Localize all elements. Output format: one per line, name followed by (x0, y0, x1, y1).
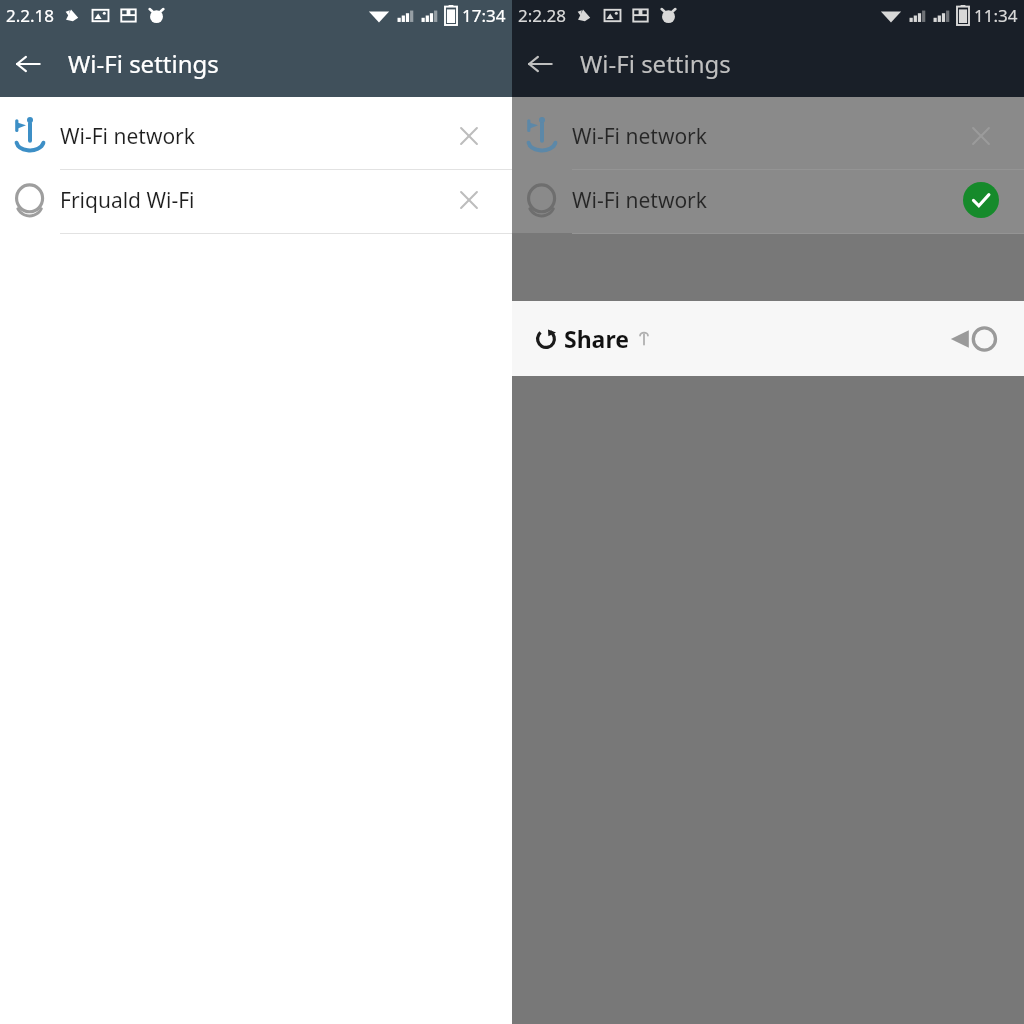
button[interactable]: Friquald Wi-Fi (0, 168, 512, 232)
button[interactable]: Share (512, 301, 1024, 376)
button[interactable]: Connected (938, 168, 1024, 232)
button[interactable]: Wi-Fi network (512, 104, 1024, 168)
other: Back (946, 309, 1006, 369)
staticText: Friquald Wi-Fi (60, 186, 195, 215)
staticText: Wi-Fi settings (580, 47, 731, 80)
staticText: 2.2.18 (6, 4, 55, 27)
button[interactable]: Wi-Fi network (0, 104, 512, 168)
staticText: Wi-Fi network (60, 122, 195, 151)
staticText: Share (564, 323, 629, 354)
button[interactable]: Forget network (426, 104, 512, 168)
staticText: Wi-Fi settings (68, 47, 219, 80)
button[interactable]: Back (512, 36, 568, 92)
button[interactable]: Wi-Fi network (512, 168, 1024, 232)
staticText: 2:2.28 (518, 4, 567, 27)
staticText: 11:34 (974, 4, 1018, 27)
button[interactable]: Back (0, 36, 56, 92)
button[interactable]: Forget network (426, 168, 512, 232)
staticText: Wi-Fi network (572, 122, 707, 151)
staticText: Wi-Fi network (572, 186, 707, 215)
staticText: 17:34 (462, 4, 506, 27)
